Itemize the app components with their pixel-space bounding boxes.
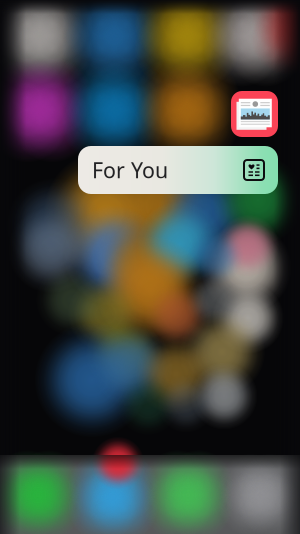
button[interactable]: For You <box>78 146 278 194</box>
staticText: For You <box>92 156 168 184</box>
